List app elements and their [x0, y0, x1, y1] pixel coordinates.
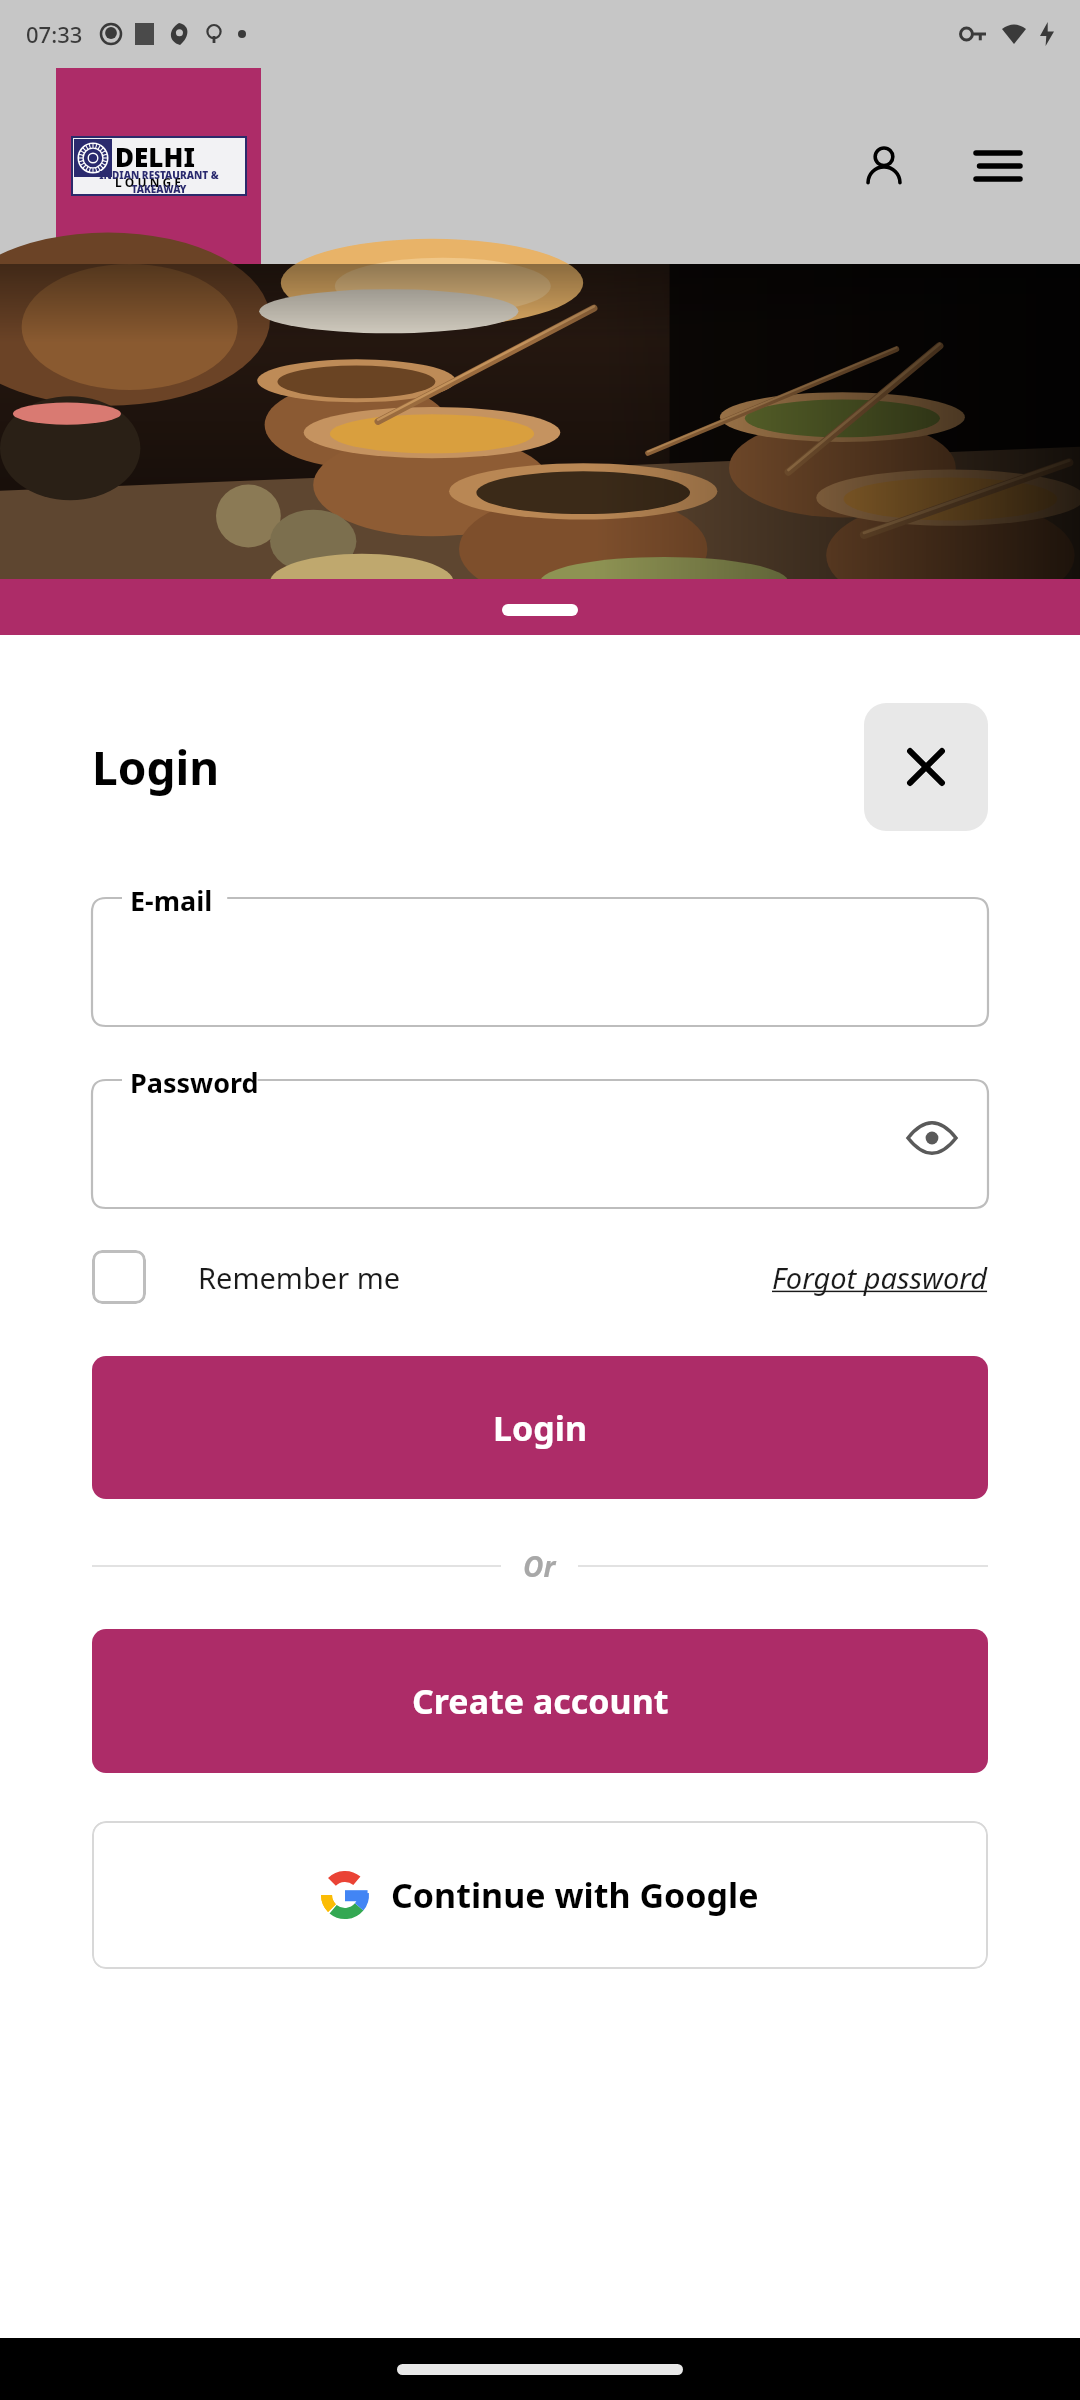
staticText: INDIAN RESTAURANT & TAKEAWAY	[71, 168, 247, 196]
staticText: Login	[92, 736, 220, 799]
button[interactable]: Close	[864, 703, 988, 831]
button[interactable]: Create account	[92, 1629, 988, 1773]
staticText: L O U N G E	[115, 174, 182, 190]
button[interactable]: Forgot password	[772, 1258, 988, 1297]
staticText: 07:33	[26, 19, 83, 49]
button[interactable]: Remember me	[92, 1250, 401, 1304]
staticText: Or	[523, 1547, 556, 1585]
staticText: E-mail	[130, 882, 213, 919]
button[interactable]: Continue with Google	[92, 1821, 988, 1969]
staticText: Forgot password	[772, 1258, 988, 1297]
button[interactable]: Login	[92, 1356, 988, 1499]
staticText: Continue with Google	[391, 1872, 759, 1918]
staticText: Login	[493, 1405, 588, 1451]
staticText: Create account	[412, 1678, 669, 1724]
staticText: Password	[130, 1064, 259, 1101]
button[interactable]: Account	[848, 130, 920, 202]
button[interactable]: E-mail	[92, 886, 988, 1026]
staticText: Remember me	[198, 1258, 401, 1297]
button[interactable]: Password	[92, 1068, 988, 1208]
button[interactable]: Menu	[962, 130, 1034, 202]
staticText: DELHI	[115, 139, 195, 174]
